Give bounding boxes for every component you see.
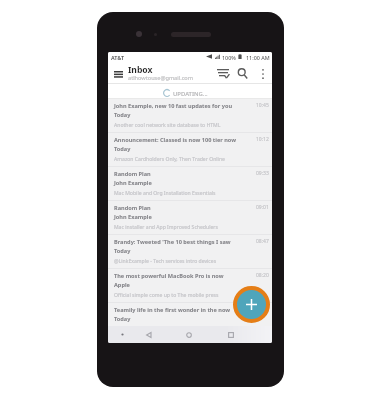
button[interactable]: Sort [213, 62, 232, 83]
staticText: @LinkExample - Tech services intro devic… [114, 258, 217, 265]
button[interactable]: Home [180, 326, 198, 343]
button[interactable]: Random Plan [108, 167, 272, 200]
staticText: Apple [114, 281, 130, 289]
staticText: 11:00 AM [246, 54, 270, 61]
staticText: 10:12 [256, 136, 269, 143]
staticText: Amazon Cardholders Only, Then Trader Onl… [114, 156, 225, 163]
staticText: Mac Mobile and Org Installation Essentia… [114, 190, 216, 197]
button[interactable]: Teamily life in the first wonder in the … [108, 303, 272, 326]
button[interactable]: Back [139, 326, 157, 343]
staticText: Inbox [128, 64, 153, 76]
staticText: Official simple come up to The mobile pr… [114, 292, 219, 299]
staticText: Today [114, 315, 131, 323]
button[interactable]: Open navigation drawer [108, 62, 128, 83]
staticText: Random Plan [114, 204, 151, 212]
staticText: John Example [114, 179, 152, 187]
staticText: 08:20 [256, 272, 269, 279]
staticText: Announcement: Classed is now 100 tier no… [114, 136, 237, 144]
button[interactable]: More options [253, 62, 272, 83]
button[interactable]: Announcement: Classed is now 100 tier no… [108, 133, 272, 166]
button[interactable]: Random Plan [108, 201, 272, 234]
staticText: 08:47 [256, 238, 269, 245]
staticText: Brandy: Tweeted 'The 10 best things I sa… [114, 238, 231, 246]
button[interactable]: The most powerful MacBook Pro is now [108, 269, 272, 302]
button[interactable]: Menu [116, 326, 128, 343]
staticText: 09:01 [256, 204, 269, 211]
staticText: 07:55 [256, 306, 269, 313]
button[interactable]: John Example, new 10 fast updates for yo… [108, 99, 272, 132]
staticText: Random Plan [114, 170, 151, 178]
button[interactable]: Recent apps [222, 326, 240, 343]
staticText: atlhowtouse@gmail.com [128, 74, 193, 82]
staticText: Today [114, 145, 131, 153]
staticText: 100% [222, 54, 236, 61]
staticText: AT&T [111, 54, 125, 61]
staticText: 09:33 [256, 170, 269, 177]
staticText: Another cool network site database to HT… [114, 122, 221, 129]
staticText: Teamily life in the first wonder in the … [114, 306, 231, 314]
staticText: Today [114, 111, 131, 119]
button[interactable]: Brandy: Tweeted 'The 10 best things I sa… [108, 235, 272, 268]
staticText: Mac installer and App Improved Scheduler… [114, 224, 218, 231]
staticText: John Example [114, 213, 152, 221]
staticText: Today [114, 247, 131, 255]
button[interactable]: Search [233, 62, 252, 83]
staticText: John Example, new 10 fast updates for yo… [114, 102, 233, 110]
staticText: The most powerful MacBook Pro is now [114, 272, 224, 280]
staticText: 10:45 [256, 102, 269, 109]
staticText: UPDATING... [173, 90, 208, 98]
button[interactable]: Compose [237, 290, 266, 319]
